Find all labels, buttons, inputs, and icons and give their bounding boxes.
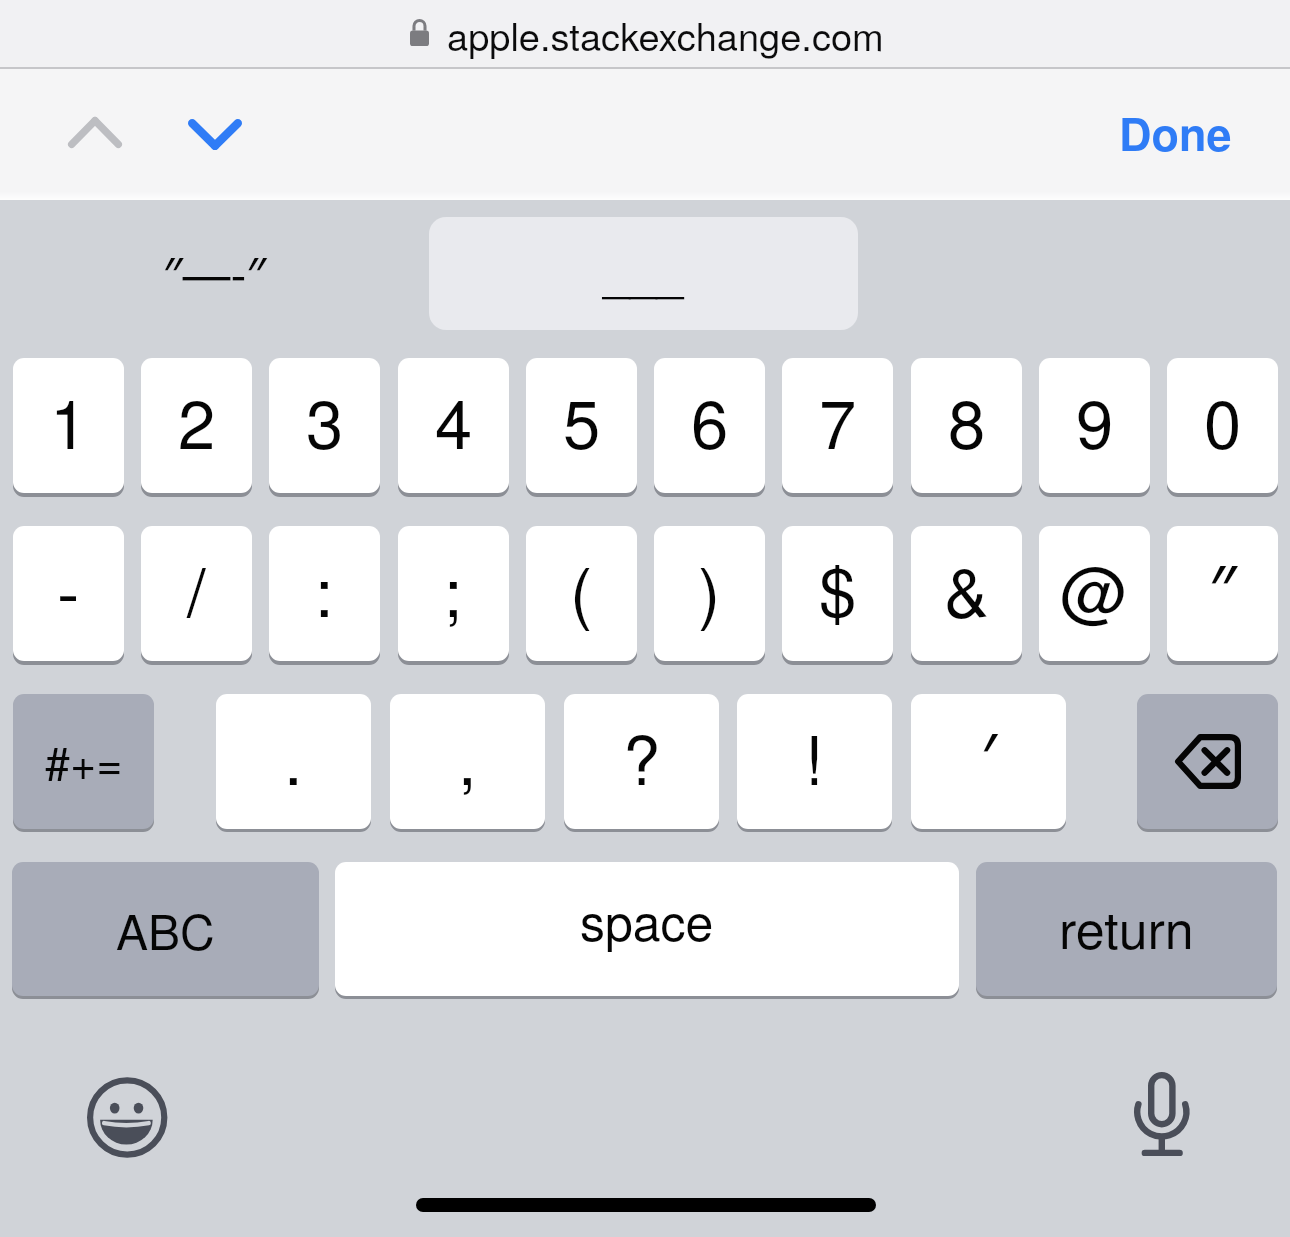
button[interactable]: Dictation [1134,1068,1190,1158]
button[interactable]: / [141,526,252,661]
button[interactable]: & [911,526,1022,661]
staticText: 6 [691,372,729,468]
staticText: . [284,708,303,804]
staticText: 9 [1076,372,1114,468]
staticText: apple.stackexchange.com [447,7,884,61]
staticText: / [187,540,206,636]
button[interactable]: ′ [911,694,1066,829]
button[interactable]: 9 [1039,358,1150,493]
staticText: , [458,708,477,804]
button[interactable]: Emoji keyboard [87,1077,168,1158]
staticText: 1 [50,372,88,468]
staticText: ; [444,540,463,636]
staticText: ′ [981,710,997,801]
button[interactable]: 5 [526,358,637,493]
staticText: 3 [306,372,344,468]
button[interactable]: 4 [398,358,509,493]
staticText: 8 [948,372,986,468]
button[interactable]: ( [526,526,637,661]
staticText: ″—-″ [163,237,267,306]
staticText: space [580,884,714,956]
button[interactable]: Done [1107,96,1244,168]
button[interactable]: Previous field [48,91,142,173]
staticText: - [57,540,80,636]
button[interactable]: ″—-″ [144,217,286,330]
button[interactable]: : [269,526,380,661]
button[interactable]: space [335,862,959,996]
staticText: 2 [178,372,216,468]
staticText: : [315,540,334,636]
button[interactable]: ! [737,694,892,829]
button[interactable]: 3 [269,358,380,493]
staticText: ? [623,708,661,804]
button[interactable]: 6 [654,358,765,493]
staticText: 0 [1204,372,1242,468]
button[interactable]: 1 [13,358,124,493]
button[interactable]: ___ [429,217,858,330]
staticText: 7 [819,372,857,468]
button[interactable] [0,0,1290,67]
staticText: #+= [45,728,123,792]
button[interactable]: . [216,694,371,829]
button[interactable]: #+= [13,694,154,829]
button[interactable]: return [976,862,1277,996]
other: Secure connection [410,19,429,46]
staticText: @ [1060,540,1129,636]
button[interactable]: ) [654,526,765,661]
button[interactable]: , [390,694,545,829]
staticText: ABC [116,895,215,964]
staticText: 4 [435,372,473,468]
staticText: ) [698,540,721,636]
button[interactable]: ? [564,694,719,829]
button[interactable]: Next field [167,93,263,175]
button[interactable]: - [13,526,124,661]
button[interactable]: @ [1039,526,1150,661]
staticText: & [944,540,989,636]
button[interactable]: ; [398,526,509,661]
button[interactable]: $ [782,526,893,661]
staticText: 5 [563,372,601,468]
staticText: Done [1119,100,1232,164]
button[interactable]: ABC [12,862,319,996]
staticText: ″ [1209,542,1237,633]
staticText: return [1059,889,1194,963]
staticText: ( [570,540,593,636]
button[interactable]: 2 [141,358,252,493]
button[interactable]: Delete [1137,694,1278,829]
button[interactable]: ″ [1167,526,1278,661]
staticText: ___ [603,236,684,305]
staticText: $ [819,540,857,636]
button[interactable]: 0 [1167,358,1278,493]
staticText: ! [805,708,824,804]
button[interactable]: 8 [911,358,1022,493]
button[interactable]: 7 [782,358,893,493]
